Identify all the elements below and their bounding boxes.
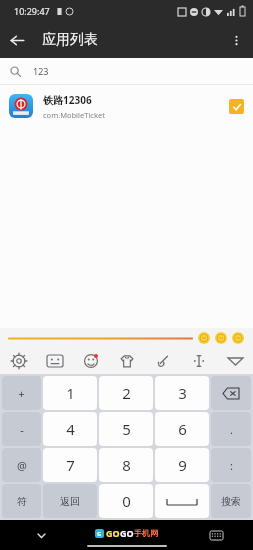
button[interactable]: Handwriting [145, 348, 181, 374]
button[interactable]: Coin [215, 332, 227, 344]
button[interactable]: Space [155, 484, 209, 518]
staticText: 5 [122, 419, 131, 439]
staticText: 10:29:47 [14, 5, 50, 17]
button[interactable]: Selected [229, 99, 244, 114]
button[interactable]: Cursor [181, 348, 217, 374]
button[interactable]: Back [0, 23, 34, 57]
button[interactable]: - [2, 412, 41, 446]
button[interactable]: 搜索 [211, 484, 251, 518]
staticText: 1 [66, 383, 75, 403]
staticText: 手机网 [134, 528, 158, 538]
button[interactable]: Switch keyboard [205, 524, 227, 546]
staticText: 搜索 [221, 495, 241, 508]
button[interactable]: : [211, 448, 251, 482]
staticText: 7 [66, 455, 75, 475]
staticText: 2 [122, 383, 131, 403]
button[interactable]: Keyboard [37, 348, 73, 374]
button[interactable]: Emoji [73, 348, 109, 374]
button[interactable]: 铁路12306 [0, 85, 253, 127]
button[interactable]: 0 [99, 484, 153, 518]
button[interactable]: Hide [217, 348, 253, 374]
staticText: 铁路12306 [43, 93, 92, 107]
button[interactable]: 9 [155, 448, 209, 482]
staticText: . [230, 422, 233, 437]
staticText: + [18, 386, 25, 401]
button[interactable]: 2 [99, 376, 153, 410]
staticText: GO [106, 527, 120, 539]
staticText: 符 [17, 495, 27, 508]
staticText: 123 [33, 65, 49, 77]
button[interactable]: Backspace [211, 376, 251, 410]
button[interactable]: 符 [2, 484, 41, 518]
staticText: 应用列表 [42, 31, 98, 49]
staticText: 3 [178, 383, 187, 403]
button[interactable]: 4 [43, 412, 97, 446]
button[interactable]: Settings [0, 348, 37, 374]
button[interactable]: 8 [99, 448, 153, 482]
staticText: GO [120, 527, 134, 539]
staticText: 8 [122, 455, 131, 475]
button[interactable]: Theme [109, 348, 145, 374]
button[interactable]: Coin [232, 332, 244, 344]
button[interactable]: . [211, 412, 251, 446]
staticText: G [97, 530, 102, 538]
staticText: 返回 [60, 495, 80, 508]
button[interactable]: Hide keyboard [30, 524, 52, 546]
staticText: 0 [122, 491, 131, 511]
staticText: @ [17, 458, 27, 473]
staticText: : [230, 458, 233, 473]
button[interactable]: 5 [99, 412, 153, 446]
button[interactable]: 6 [155, 412, 209, 446]
staticText: 9 [178, 455, 187, 475]
staticText: 6 [178, 419, 187, 439]
button[interactable]: 返回 [43, 484, 97, 518]
button[interactable]: + [2, 376, 41, 410]
button[interactable]: 123 [0, 58, 253, 84]
button[interactable]: @ [2, 448, 41, 482]
button[interactable]: 3 [155, 376, 209, 410]
button[interactable]: 7 [43, 448, 97, 482]
button[interactable]: 1 [43, 376, 97, 410]
staticText: 4 [66, 419, 75, 439]
staticText: com.MobileTicket [43, 110, 105, 120]
button[interactable]: More options [219, 23, 253, 57]
staticText: - [20, 422, 24, 437]
button[interactable]: Coin [198, 332, 210, 344]
